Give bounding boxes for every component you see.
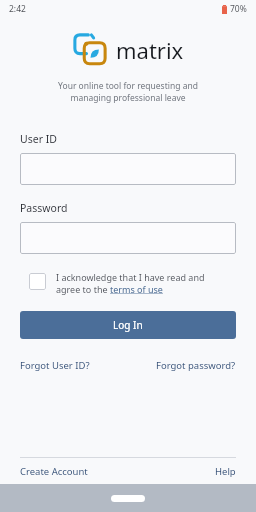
button[interactable]: Home — [111, 495, 145, 502]
button[interactable]: Forgot User ID? — [20, 359, 90, 372]
staticText: agree to the — [56, 283, 110, 295]
other: Acknowledge terms checkbox — [29, 273, 46, 290]
button[interactable] — [20, 222, 236, 254]
button[interactable]: Log In — [20, 311, 236, 339]
staticText: matrix — [116, 35, 184, 65]
staticText: Log In — [113, 318, 143, 332]
staticText: Password — [20, 201, 68, 215]
staticText: Create Account — [20, 465, 88, 478]
button[interactable]: Help — [215, 465, 236, 478]
staticText: I acknowledge that I have read and — [56, 271, 205, 283]
button[interactable] — [20, 153, 236, 185]
staticText: 70% — [230, 3, 247, 15]
staticText: Forgot password? — [156, 359, 236, 372]
button[interactable]: Acknowledge terms checkbox — [20, 271, 236, 295]
staticText: Forgot User ID? — [20, 359, 90, 372]
button[interactable]: Forgot password? — [156, 359, 236, 372]
button[interactable]: terms of use — [110, 283, 163, 295]
staticText: Your online tool for requesting and mana… — [20, 80, 236, 104]
staticText: Help — [215, 465, 236, 478]
staticText: User ID — [20, 132, 57, 146]
staticText: 2:42 — [9, 3, 26, 15]
button[interactable]: Create Account — [20, 465, 88, 478]
